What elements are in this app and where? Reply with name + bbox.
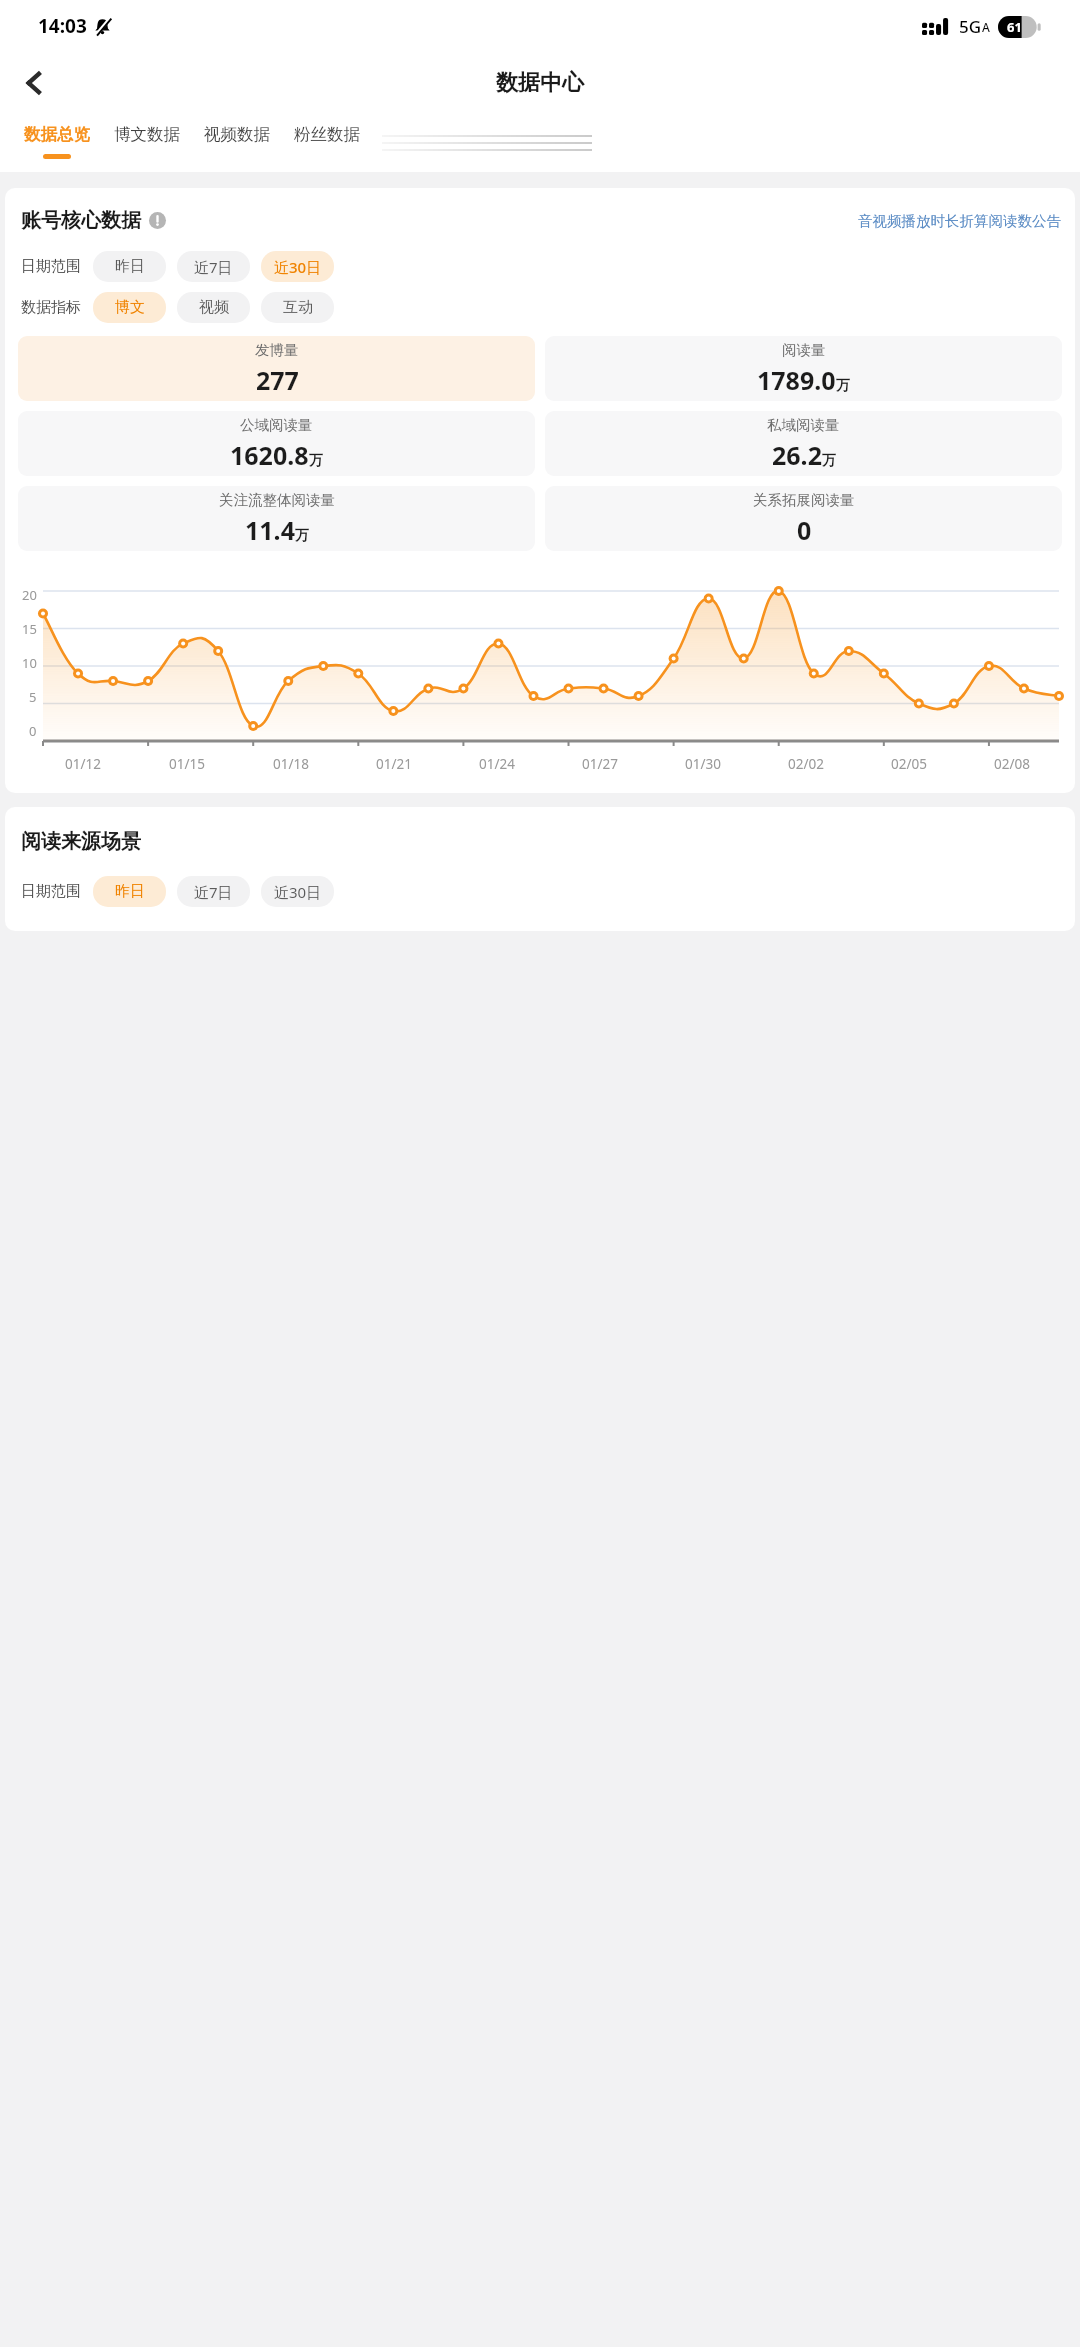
staticText: 5G <box>959 15 982 38</box>
button[interactable]: 近30日 <box>261 251 334 282</box>
button[interactable]: 近7日 <box>177 251 250 282</box>
staticText: 数据指标 <box>21 298 81 317</box>
staticText: 日期范围 <box>21 257 81 276</box>
staticText: 01/30 <box>685 755 721 773</box>
staticText: 1789.0 <box>757 363 836 397</box>
staticText: 0 <box>797 513 812 547</box>
staticText: 15 <box>22 620 37 638</box>
staticText: 277 <box>256 363 299 397</box>
staticText: 11.4 <box>245 513 295 547</box>
staticText: 14:03 <box>38 13 87 39</box>
staticText: 近30日 <box>274 257 322 277</box>
button[interactable]: 粉丝数据 <box>282 114 372 172</box>
staticText: 01/12 <box>65 755 101 773</box>
staticText: 5 <box>29 688 37 706</box>
button[interactable]: 近7日 <box>177 876 250 907</box>
button[interactable]: Info <box>149 212 166 229</box>
staticText: 02/02 <box>788 755 824 773</box>
staticText: 万 <box>836 377 850 395</box>
staticText: 01/18 <box>273 755 309 773</box>
staticText: 博文 <box>115 298 145 317</box>
button[interactable]: 昨日 <box>93 251 166 282</box>
staticText: 数据中心 <box>496 69 584 97</box>
button[interactable]: 博文 <box>93 292 166 323</box>
staticText: 昨日 <box>115 882 145 901</box>
staticText: 粉丝数据 <box>294 124 360 145</box>
button[interactable]: 视频 <box>177 292 250 323</box>
staticText: 账号核心数据 <box>21 208 141 233</box>
button[interactable]: 阅读量 <box>545 336 1062 401</box>
button[interactable]: 视频数据 <box>192 114 282 172</box>
staticText: 音视频播放时长折算阅读数公告 <box>858 212 1061 230</box>
staticText: 公域阅读量 <box>240 416 313 434</box>
staticText: 10 <box>22 654 37 672</box>
staticText: 02/08 <box>994 755 1030 773</box>
staticText: 02/05 <box>891 755 927 773</box>
button[interactable]: 博文数据 <box>102 114 192 172</box>
button[interactable]: 发博量 <box>18 336 535 401</box>
staticText: 近30日 <box>274 882 322 902</box>
staticText: 01/21 <box>376 755 412 773</box>
staticText: 万 <box>309 452 323 470</box>
staticText: 61 <box>1007 18 1022 36</box>
staticText: 近7日 <box>194 257 233 277</box>
staticText: A <box>982 19 990 35</box>
button[interactable]: 音视频播放时长折算阅读数公告 <box>858 212 1061 230</box>
staticText: 私域阅读量 <box>767 416 840 434</box>
staticText: 视频数据 <box>204 124 270 145</box>
staticText: 关系拓展阅读量 <box>753 491 855 509</box>
staticText: 万 <box>295 527 309 545</box>
staticText: 阅读来源场景 <box>21 829 141 854</box>
staticText: 01/15 <box>169 755 205 773</box>
button[interactable]: 互动 <box>261 292 334 323</box>
staticText: 昨日 <box>115 257 145 276</box>
button[interactable]: 私域阅读量 <box>545 411 1062 476</box>
staticText: 01/27 <box>582 755 618 773</box>
staticText: 阅读量 <box>782 341 826 359</box>
staticText: 26.2 <box>772 438 822 472</box>
staticText: 万 <box>822 452 836 470</box>
button[interactable]: 数据总览 <box>12 114 102 172</box>
button[interactable]: 关注流整体阅读量 <box>18 486 535 551</box>
staticText: 博文数据 <box>114 124 180 145</box>
staticText: 发博量 <box>255 341 299 359</box>
staticText: 近7日 <box>194 882 233 902</box>
staticText: 日期范围 <box>21 882 81 901</box>
staticText: 关注流整体阅读量 <box>219 491 335 509</box>
staticText: 01/24 <box>479 755 515 773</box>
button[interactable]: 昨日 <box>93 876 166 907</box>
button[interactable]: 公域阅读量 <box>18 411 535 476</box>
staticText: 互动 <box>283 298 313 317</box>
staticText: 1620.8 <box>230 438 309 472</box>
staticText: 0 <box>29 722 37 740</box>
staticText: 视频 <box>199 298 229 317</box>
button[interactable]: 近30日 <box>261 876 334 907</box>
staticText: 数据总览 <box>24 124 90 145</box>
button[interactable]: 关系拓展阅读量 <box>545 486 1062 551</box>
staticText: 20 <box>22 586 37 604</box>
button[interactable]: Back <box>8 57 60 109</box>
